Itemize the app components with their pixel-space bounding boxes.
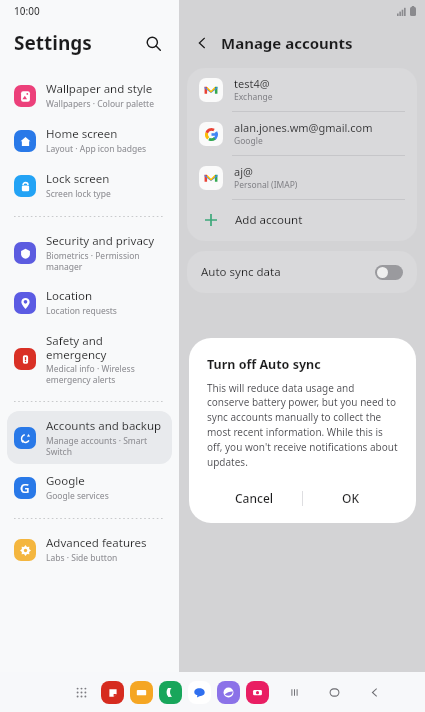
staticText: Security and privacy — [46, 233, 155, 249]
button[interactable]: Back — [189, 30, 215, 56]
staticText: G — [20, 479, 30, 497]
button[interactable]: Messages — [188, 681, 211, 704]
button[interactable]: Add account — [187, 200, 417, 241]
button[interactable]: Lock screen — [7, 164, 172, 207]
staticText: Screen lock type — [46, 188, 111, 200]
button[interactable]: Apps — [68, 679, 94, 705]
staticText: Google services — [46, 490, 109, 502]
button[interactable]: Wallpaper and style — [7, 74, 172, 117]
button[interactable]: test4@ — [187, 68, 417, 111]
staticText: Turn off Auto sync — [207, 356, 321, 373]
staticText: Settings — [14, 30, 92, 56]
button[interactable]: Phone — [159, 681, 182, 704]
staticText: Medical info · Wireless emergency alerts — [46, 363, 166, 385]
staticText: OK — [342, 490, 359, 506]
button[interactable]: Search — [139, 29, 167, 57]
staticText: Exchange — [234, 91, 273, 103]
button[interactable]: Back — [362, 680, 386, 704]
button[interactable]: OK — [303, 483, 398, 513]
staticText: Google — [46, 473, 85, 489]
button[interactable]: Home — [322, 680, 346, 704]
staticText: 10:00 — [14, 4, 40, 18]
button[interactable]: Camera — [246, 681, 269, 704]
button[interactable]: My Files — [130, 681, 153, 704]
staticText: Home screen — [46, 126, 118, 142]
button[interactable]: Samsung Notes — [101, 681, 124, 704]
staticText: Layout · App icon badges — [46, 143, 147, 155]
button[interactable]: Advanced features — [7, 528, 172, 571]
button[interactable]: aj@ — [187, 156, 417, 199]
staticText: Safety and emergency — [46, 333, 166, 362]
button[interactable]: Cancel — [207, 483, 302, 513]
staticText: This will reduce data usage and conserve… — [207, 381, 398, 469]
staticText: Manage accounts — [221, 33, 353, 53]
staticText: Biometrics · Permission manager — [46, 250, 166, 272]
button[interactable]: Accounts and backup — [7, 411, 172, 464]
button[interactable]: Location — [7, 281, 172, 324]
staticText: Personal (IMAP) — [234, 179, 298, 191]
staticText: Add account — [235, 212, 303, 228]
staticText: Wallpapers · Colour palette — [46, 98, 154, 110]
button[interactable]: alan.jones.wm@gmail.com — [187, 112, 417, 155]
button[interactable]: Safety and emergency — [7, 326, 172, 392]
staticText: Location — [46, 288, 93, 304]
staticText: Accounts and backup — [46, 418, 162, 434]
staticText: Labs · Side button — [46, 552, 118, 564]
button[interactable]: Security and privacy — [7, 226, 172, 279]
staticText: Advanced features — [46, 535, 147, 551]
button[interactable]: G — [7, 466, 172, 509]
staticText: Location requests — [46, 305, 117, 317]
staticText: test4@ — [234, 76, 270, 91]
staticText: Manage accounts · Smart Switch — [46, 435, 166, 457]
button[interactable]: Auto sync data — [187, 251, 417, 293]
button[interactable]: Recents — [282, 680, 306, 704]
button[interactable]: Home screen — [7, 119, 172, 162]
staticText: Auto sync data — [201, 264, 281, 280]
staticText: Wallpaper and style — [46, 81, 153, 97]
staticText: aj@ — [234, 164, 253, 179]
staticText: Cancel — [235, 490, 274, 506]
staticText: alan.jones.wm@gmail.com — [234, 120, 373, 135]
staticText: Google — [234, 135, 263, 147]
staticText: Lock screen — [46, 171, 110, 187]
button[interactable]: Auto sync data toggle — [375, 265, 403, 280]
button[interactable]: Internet — [217, 681, 240, 704]
